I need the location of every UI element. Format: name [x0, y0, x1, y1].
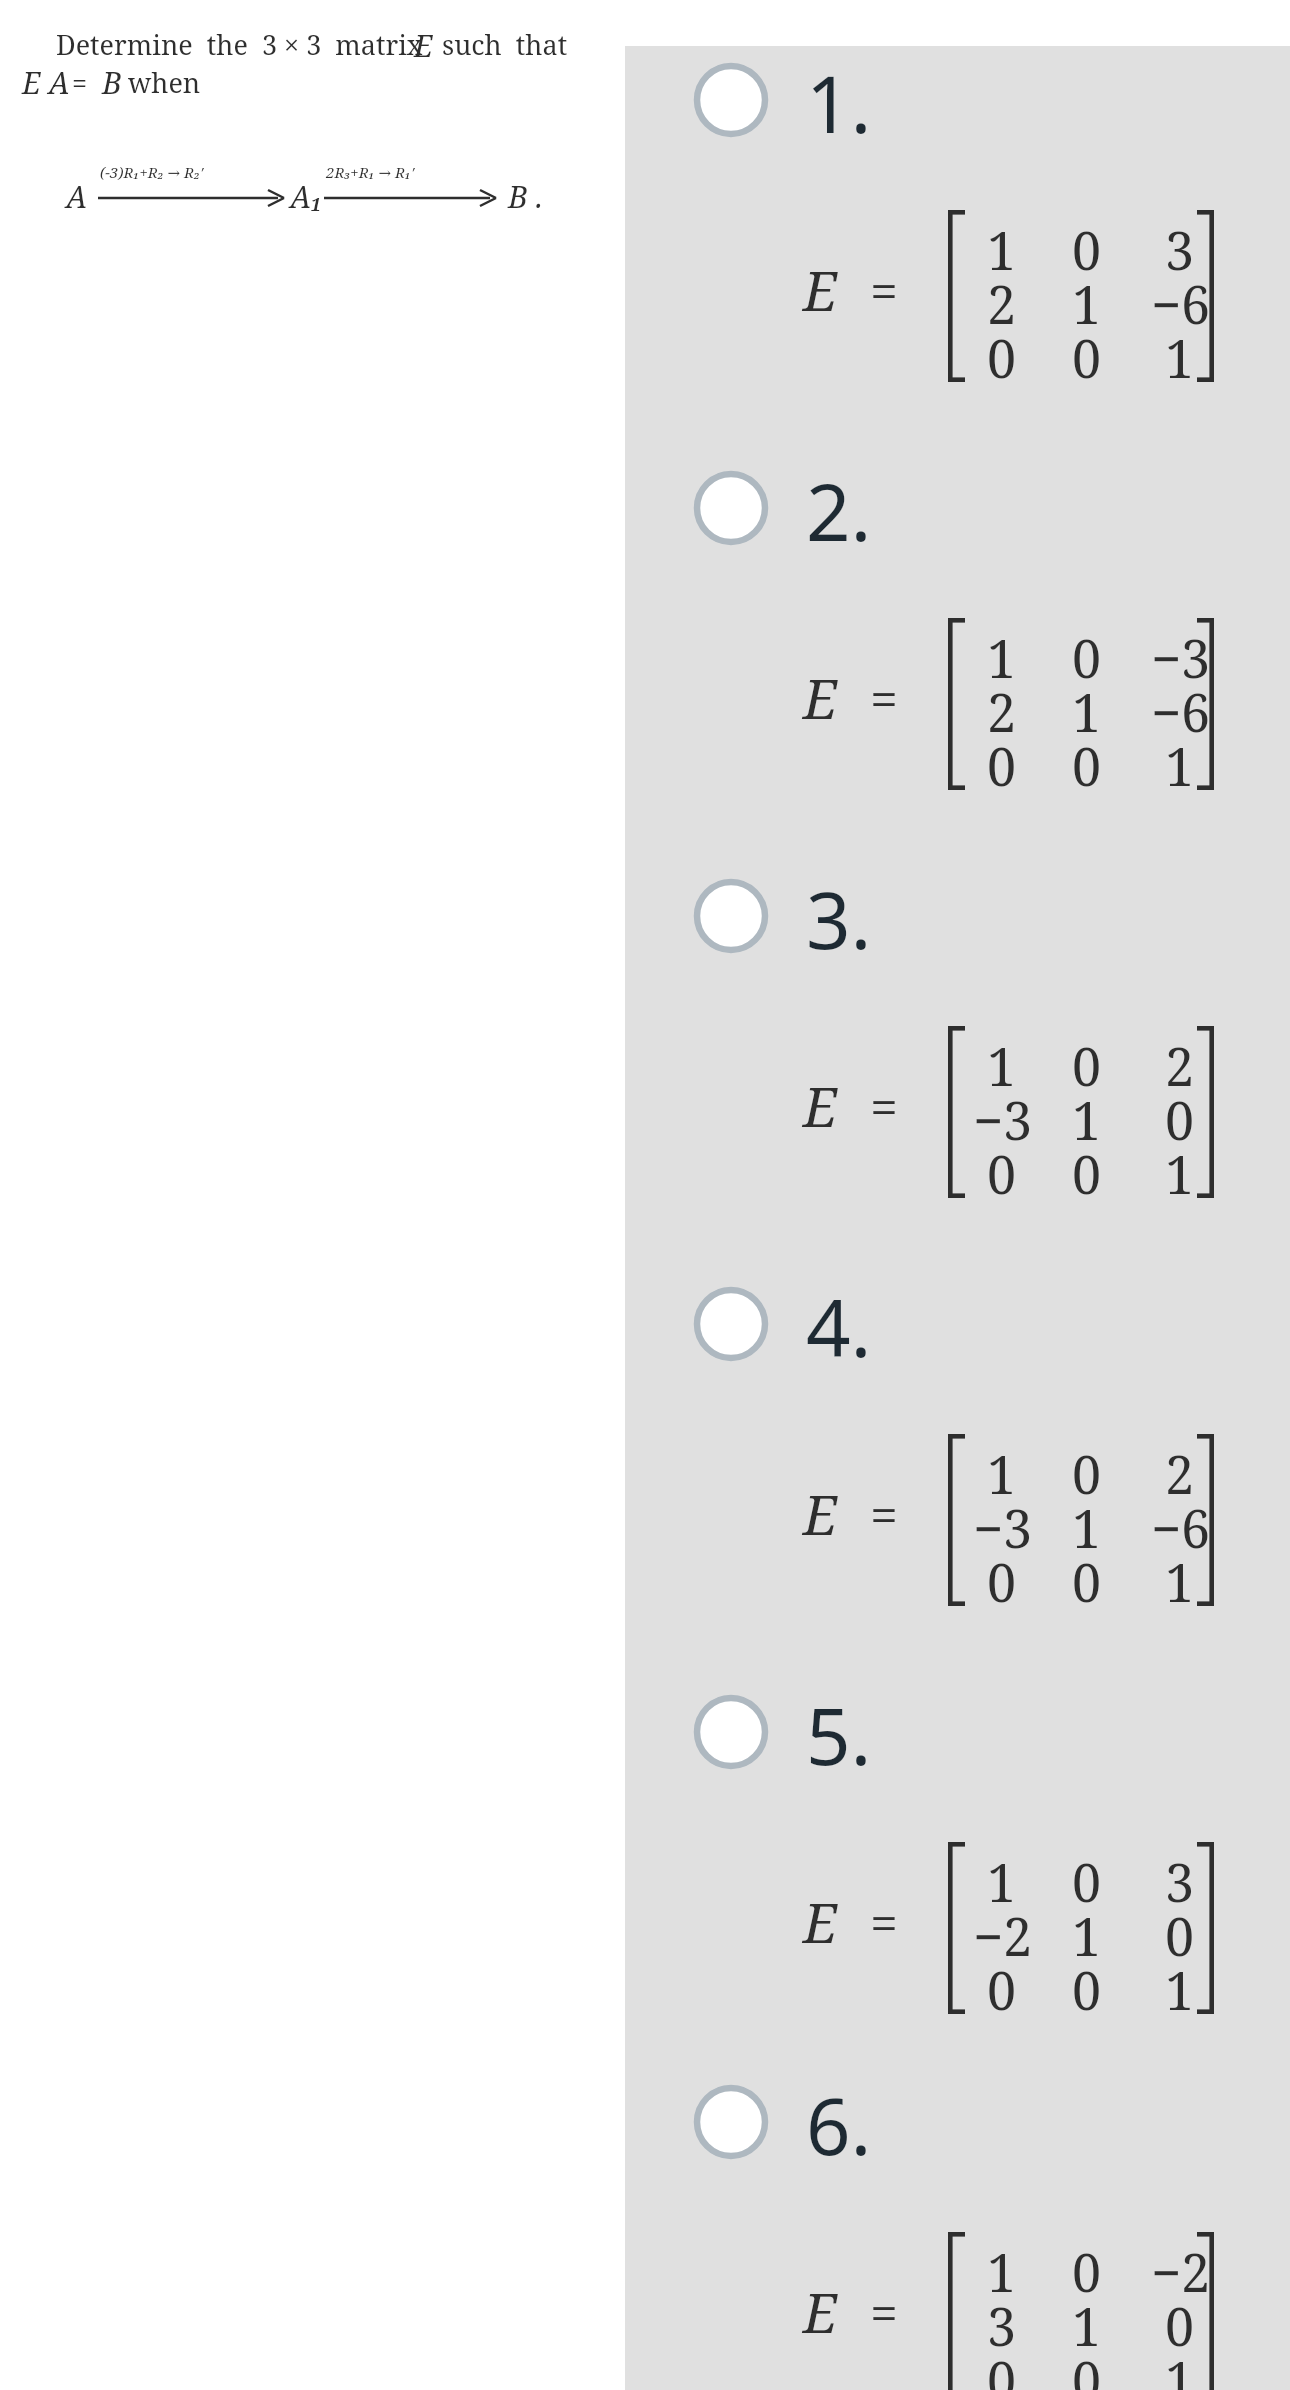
staticText: 3. [806, 866, 872, 972]
staticText: A [66, 176, 88, 217]
button[interactable]: Select answer option 3 [694, 879, 768, 953]
staticText: 1 [987, 214, 1017, 285]
staticText: E [803, 252, 838, 327]
staticText: −3 [973, 1084, 1033, 1155]
staticText: 1. [806, 50, 872, 156]
staticText: (−3)R₁+R₂ → R₂′ [100, 162, 204, 182]
staticText: such that [442, 26, 568, 63]
staticText: 0 [1072, 1030, 1102, 1101]
staticText: 0 [1072, 622, 1102, 693]
staticText: E [414, 25, 433, 66]
staticText: B . [508, 176, 543, 217]
staticText: 0 [1072, 1546, 1102, 1617]
staticText: 6. [806, 2072, 872, 2178]
staticText: E [803, 1068, 838, 1143]
staticText: 0 [1072, 1438, 1102, 1509]
staticText: 2 [1165, 1438, 1195, 1509]
staticText: = [72, 64, 88, 101]
staticText: 0 [1072, 2236, 1102, 2307]
staticText: 0 [1072, 1846, 1102, 1917]
staticText: Determine the 3 × 3 matrix [56, 26, 423, 63]
button[interactable]: Select answer option 1 [694, 63, 768, 137]
staticText: 0 [987, 1546, 1017, 1617]
staticText: 0 [987, 1954, 1017, 2025]
staticText: 2 [987, 676, 1017, 747]
staticText: 1 [1165, 1138, 1195, 1209]
staticText: B [102, 62, 122, 103]
staticText: −6 [1151, 676, 1211, 747]
staticText: 0 [1072, 1954, 1102, 2025]
staticText: 3 [1165, 214, 1195, 285]
staticText: 1 [1165, 730, 1195, 801]
staticText: 4. [806, 1274, 872, 1380]
staticText: 0 [987, 2344, 1017, 2390]
staticText: 1 [1072, 1492, 1102, 1563]
staticText: E [803, 2274, 838, 2349]
staticText: 0 [1072, 214, 1102, 285]
staticText: 3 [987, 2290, 1017, 2361]
staticText: 2 [987, 268, 1017, 339]
staticText: 1 [1165, 1546, 1195, 1617]
staticText: 1 [1072, 1084, 1102, 1155]
staticText: = [870, 256, 898, 324]
staticText: 0 [1165, 1084, 1195, 1155]
staticText: 0 [987, 730, 1017, 801]
staticText: = [870, 664, 898, 732]
staticText: 2. [806, 458, 872, 564]
button[interactable]: Select answer option 6 [694, 2085, 768, 2159]
staticText: 0 [1072, 1138, 1102, 1209]
button[interactable]: Select answer option 2 [694, 471, 768, 545]
staticText: 1 [1072, 1900, 1102, 1971]
staticText: = [870, 2278, 898, 2346]
staticText: E [803, 1884, 838, 1959]
staticText: 1 [1072, 2290, 1102, 2361]
staticText: −6 [1151, 1492, 1211, 1563]
staticText: A₁ [290, 176, 324, 217]
staticText: 1 [987, 1030, 1017, 1101]
button[interactable]: Select answer option 5 [694, 1695, 768, 1769]
staticText: E [803, 660, 838, 735]
staticText: 1 [987, 2236, 1017, 2307]
staticText: 2R₃+R₁ → R₁′ [326, 162, 415, 182]
staticText: 3 [1165, 1846, 1195, 1917]
staticText: −2 [1151, 2236, 1211, 2307]
staticText: = [870, 1888, 898, 1956]
staticText: = [870, 1072, 898, 1140]
staticText: 1 [1072, 676, 1102, 747]
staticText: −3 [1151, 622, 1211, 693]
staticText: 0 [1165, 2290, 1195, 2361]
staticText: −3 [973, 1492, 1033, 1563]
staticText: 0 [1072, 730, 1102, 801]
staticText: 1 [1165, 322, 1195, 393]
staticText: 1 [987, 622, 1017, 693]
staticText: E A [22, 62, 70, 103]
staticText: −6 [1151, 268, 1211, 339]
staticText: −2 [973, 1900, 1033, 1971]
staticText: 5. [806, 1682, 872, 1788]
staticText: 0 [1072, 322, 1102, 393]
staticText: 0 [987, 322, 1017, 393]
staticText: 0 [1165, 1900, 1195, 1971]
staticText: 0 [987, 1138, 1017, 1209]
staticText: 1 [1165, 2344, 1195, 2390]
staticText: 0 [1072, 2344, 1102, 2390]
staticText: 1 [1165, 1954, 1195, 2025]
staticText: 1 [1072, 268, 1102, 339]
staticText: = [870, 1480, 898, 1548]
staticText: 2 [1165, 1030, 1195, 1101]
staticText: 1 [987, 1438, 1017, 1509]
staticText: E [803, 1476, 838, 1551]
staticText: when [128, 64, 201, 101]
button[interactable]: Select answer option 4 [694, 1287, 768, 1361]
staticText: 1 [987, 1846, 1017, 1917]
